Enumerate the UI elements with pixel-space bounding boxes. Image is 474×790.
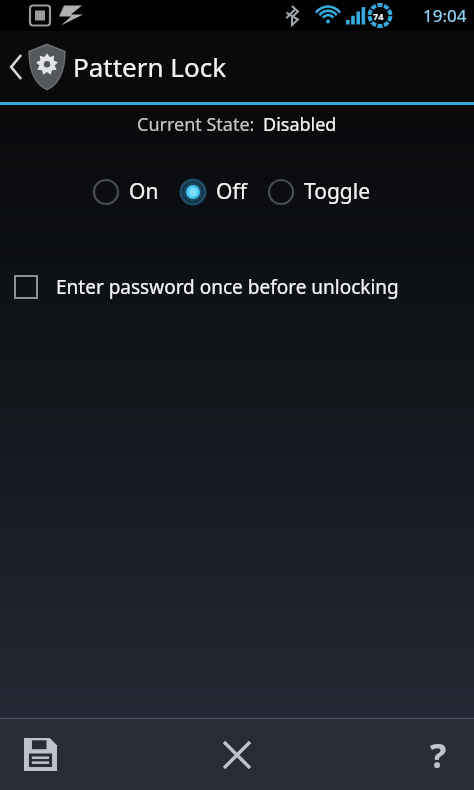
staticText: 19:04 (423, 4, 467, 27)
button[interactable]: On (92, 173, 159, 210)
button[interactable]: Cancel (158, 719, 316, 790)
staticText: Enter password once before unlocking (56, 274, 399, 300)
button[interactable]: Back (0, 31, 474, 102)
staticText: On (129, 177, 159, 206)
staticText: 74 (373, 10, 384, 22)
staticText: Toggle (304, 177, 371, 206)
button[interactable]: Off (179, 173, 247, 210)
staticText: Off (216, 177, 247, 206)
other: Back (5, 47, 23, 87)
button[interactable]: Save (0, 719, 158, 790)
button[interactable]: Toggle (267, 173, 371, 210)
staticText: ? (430, 732, 447, 778)
staticText: Disabled (263, 112, 337, 137)
button[interactable]: Help (316, 719, 474, 790)
button[interactable]: Enter password once before unlocking (0, 270, 474, 304)
staticText: Pattern Lock (73, 49, 227, 84)
staticText: Current State: (137, 112, 255, 137)
